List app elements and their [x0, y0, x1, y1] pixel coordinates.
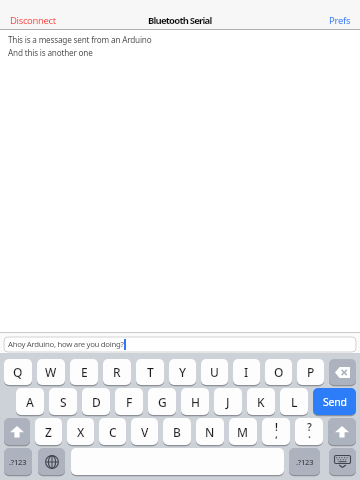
staticText: W: [45, 364, 57, 380]
staticText: A: [26, 394, 34, 410]
button[interactable]: C: [99, 418, 126, 445]
staticText: C: [109, 424, 117, 440]
button[interactable]: B: [163, 418, 191, 445]
button[interactable]: R: [103, 359, 131, 385]
staticText: M: [237, 424, 249, 440]
button[interactable]: U: [201, 359, 228, 385]
button[interactable]: [329, 359, 356, 385]
staticText: G: [158, 394, 167, 410]
button[interactable]: Prefs: [329, 14, 351, 27]
staticText: V: [141, 424, 149, 440]
button[interactable]: K: [247, 388, 275, 415]
staticText: Bluetooth Serial: [148, 14, 212, 27]
button[interactable]: P: [297, 359, 324, 385]
button[interactable]: [328, 418, 356, 445]
button[interactable]: Y: [169, 359, 196, 385]
staticText: Ahoy Arduino, how are you doing?: [8, 339, 124, 350]
staticText: P: [307, 364, 315, 380]
button[interactable]: [4, 418, 30, 445]
button[interactable]: F: [115, 388, 143, 415]
button[interactable]: X: [67, 418, 94, 445]
button[interactable]: Ahoy Arduino, how are you doing?: [4, 337, 356, 352]
staticText: O: [274, 364, 284, 380]
staticText: I: [244, 364, 249, 380]
staticText: F: [126, 394, 133, 410]
button[interactable]: Q: [4, 359, 32, 385]
staticText: Q: [13, 364, 23, 380]
staticText: Disconnect: [10, 14, 56, 27]
staticText: E: [81, 364, 88, 380]
staticText: ?: [307, 420, 312, 434]
button[interactable]: D: [82, 388, 110, 415]
staticText: H: [191, 394, 200, 410]
button[interactable]: N: [196, 418, 224, 445]
staticText: U: [210, 364, 219, 380]
staticText: ,: [275, 427, 278, 441]
button[interactable]: Disconnect: [10, 14, 56, 27]
button[interactable]: ?: [295, 418, 323, 445]
staticText: L: [291, 394, 298, 410]
button[interactable]: M: [229, 418, 257, 445]
button[interactable]: W: [37, 359, 65, 385]
staticText: .?123: [296, 457, 314, 467]
button[interactable]: [329, 448, 356, 475]
staticText: !: [275, 420, 278, 434]
button[interactable]: A: [16, 388, 44, 415]
button[interactable]: H: [181, 388, 209, 415]
staticText: K: [257, 394, 265, 410]
button[interactable]: I: [233, 359, 260, 385]
button[interactable]: T: [136, 359, 164, 385]
button[interactable]: [71, 448, 284, 475]
staticText: B: [173, 424, 181, 440]
button[interactable]: O: [265, 359, 292, 385]
button[interactable]: S: [49, 388, 77, 415]
staticText: Z: [45, 424, 52, 440]
staticText: This is a message sent from an Arduino: [8, 34, 152, 45]
button[interactable]: !: [262, 418, 290, 445]
button[interactable]: L: [280, 388, 308, 415]
staticText: Send: [323, 395, 347, 409]
button[interactable]: .?123: [4, 448, 32, 475]
button[interactable]: .?123: [289, 448, 320, 475]
staticText: J: [226, 394, 230, 410]
button[interactable]: E: [70, 359, 98, 385]
staticText: .: [308, 427, 311, 441]
staticText: Prefs: [329, 14, 351, 27]
staticText: .?123: [9, 457, 27, 467]
staticText: And this is another one: [8, 47, 93, 58]
button[interactable]: Send: [313, 388, 356, 415]
staticText: Y: [179, 364, 187, 380]
staticText: D: [92, 394, 101, 410]
button[interactable]: Z: [35, 418, 62, 445]
staticText: T: [147, 364, 154, 380]
button[interactable]: V: [131, 418, 158, 445]
staticText: R: [113, 364, 121, 380]
button[interactable]: J: [214, 388, 242, 415]
staticText: S: [60, 394, 67, 410]
staticText: N: [205, 424, 215, 440]
staticText: X: [77, 424, 85, 440]
button[interactable]: G: [148, 388, 176, 415]
button[interactable]: [38, 448, 65, 475]
